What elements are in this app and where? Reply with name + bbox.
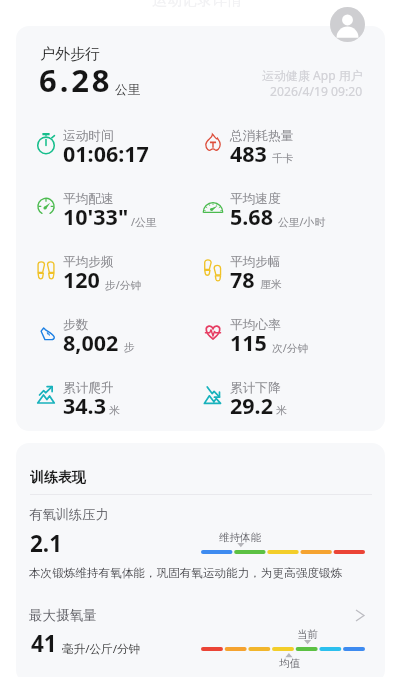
- staticText: 5.68: [230, 202, 273, 231]
- staticText: 训练表现: [30, 469, 86, 487]
- button[interactable]: 累计下降: [204, 380, 371, 431]
- staticText: 运动记录详情: [152, 0, 242, 10]
- staticText: 毫升/公斤/分钟: [62, 641, 141, 657]
- button[interactable]: 平均步幅: [204, 254, 371, 310]
- staticText: 115: [230, 328, 267, 357]
- staticText: 公里: [115, 82, 140, 98]
- staticText: 步: [124, 341, 135, 355]
- staticText: 均值: [279, 657, 300, 670]
- staticText: 483: [230, 139, 267, 168]
- staticText: 最大摄氧量: [29, 607, 356, 624]
- staticText: 平均步幅: [230, 254, 281, 270]
- button[interactable]: 平均心率: [204, 317, 371, 373]
- staticText: 次/分钟: [272, 340, 309, 355]
- staticText: 平均速度: [230, 191, 281, 207]
- button[interactable]: 最大摄氧量: [16, 602, 385, 628]
- staticText: 平均配速: [63, 191, 114, 207]
- staticText: 01:06:17: [63, 139, 149, 168]
- button[interactable]: 总消耗热量: [204, 128, 371, 184]
- staticText: 78: [230, 265, 255, 294]
- button[interactable]: 运动时间: [37, 128, 204, 184]
- staticText: 厘米: [260, 278, 282, 292]
- staticText: 千卡: [272, 152, 294, 166]
- other: View VO2 max details: [356, 610, 364, 621]
- staticText: 步/分钟: [105, 277, 142, 292]
- staticText: 累计爬升: [63, 380, 114, 396]
- staticText: 有氧训练压力: [29, 506, 109, 523]
- button[interactable]: 步数: [37, 317, 204, 373]
- staticText: 2.1: [30, 528, 63, 559]
- staticText: 平均步频: [63, 254, 114, 270]
- staticText: 120: [63, 265, 100, 294]
- staticText: 本次锻炼维持有氧体能，巩固有氧运动能力，为更高强度锻炼: [29, 566, 343, 581]
- button[interactable]: 平均步频: [37, 254, 204, 310]
- staticText: 运动健康 App 用户: [262, 67, 363, 83]
- staticText: 当前: [297, 628, 318, 641]
- button[interactable]: 平均速度: [204, 191, 371, 247]
- staticText: 米: [109, 404, 120, 418]
- staticText: 维持体能: [219, 531, 261, 544]
- staticText: 总消耗热量: [230, 128, 294, 144]
- staticText: 户外步行: [40, 45, 100, 64]
- staticText: 步数: [63, 317, 89, 333]
- button[interactable]: 累计爬升: [37, 380, 204, 431]
- staticText: 2026/4/19 09:20: [270, 83, 363, 100]
- staticText: 29.2: [230, 391, 273, 420]
- staticText: 公里/小时: [278, 214, 326, 229]
- staticText: 累计下降: [230, 380, 281, 396]
- staticText: 8,002: [63, 328, 119, 357]
- staticText: /公里: [131, 214, 157, 229]
- staticText: 41: [31, 628, 57, 659]
- staticText: 10'33": [63, 202, 129, 231]
- staticText: 34.3: [63, 391, 106, 420]
- button[interactable]: Profile: [330, 7, 365, 42]
- staticText: 平均心率: [230, 317, 281, 333]
- button[interactable]: 平均配速: [37, 191, 204, 247]
- staticText: 米: [276, 404, 287, 418]
- staticText: 6.28: [39, 59, 113, 101]
- staticText: 运动时间: [63, 128, 114, 144]
